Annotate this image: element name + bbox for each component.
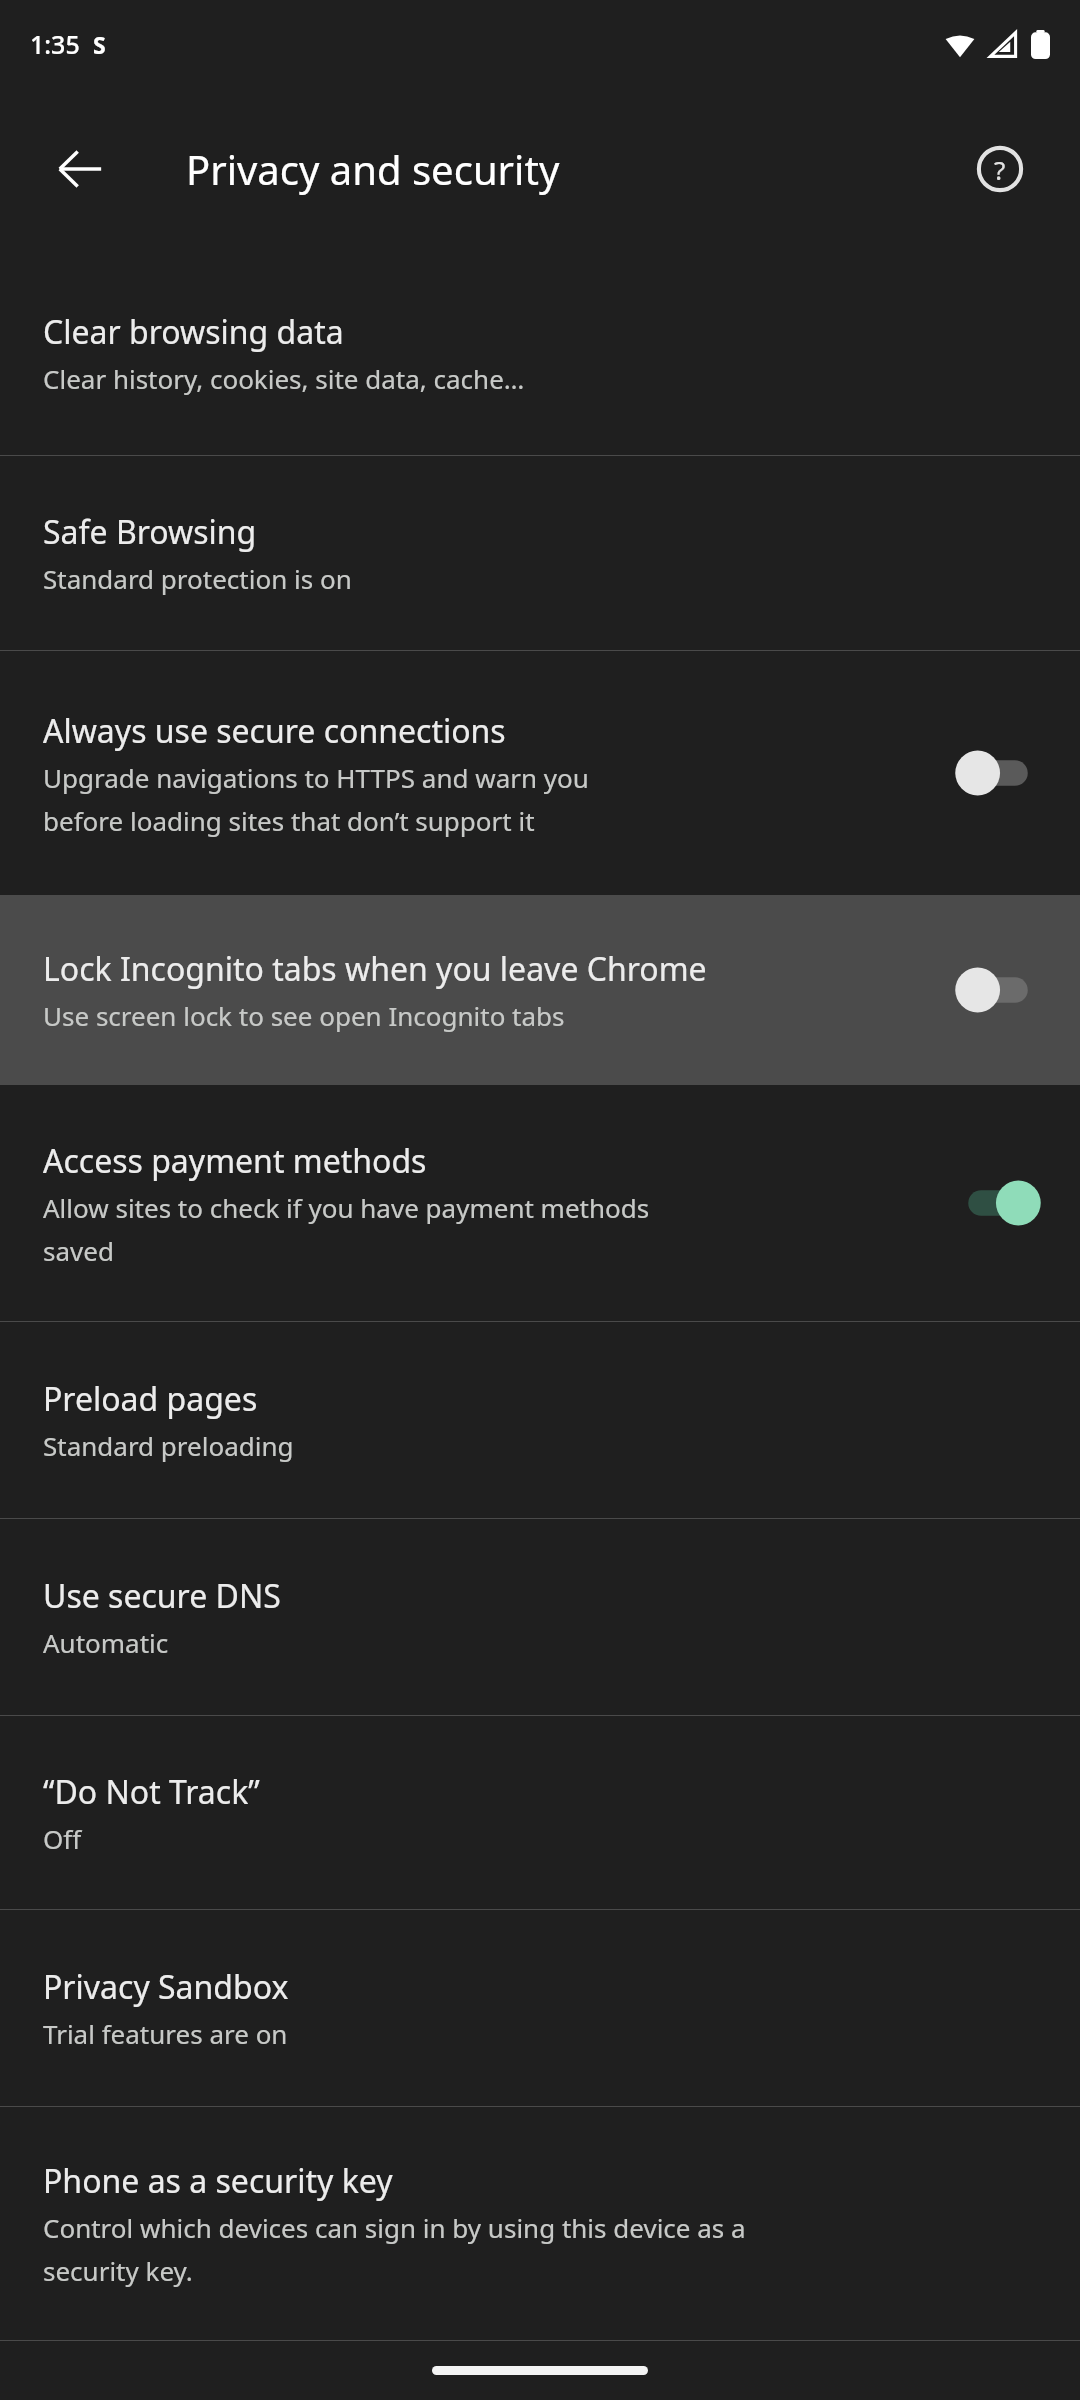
staticText: ? <box>994 152 1006 187</box>
button[interactable]: Safe Browsing <box>0 456 1080 650</box>
button[interactable]: Use secure DNS <box>0 1519 1080 1715</box>
button[interactable]: On <box>950 1171 1046 1235</box>
staticText: 1:35 <box>30 27 80 61</box>
staticText: security key. <box>43 2253 193 2288</box>
staticText: Standard protection is on <box>43 561 352 596</box>
staticText: Upgrade navigations to HTTPS and warn yo… <box>43 760 589 795</box>
staticText: Safe Browsing <box>43 510 257 554</box>
staticText: Always use secure connections <box>43 709 506 753</box>
button[interactable]: Privacy Sandbox <box>0 1910 1080 2106</box>
staticText: Allow sites to check if you have payment… <box>43 1190 650 1225</box>
staticText: Off <box>43 1821 82 1856</box>
button[interactable]: Always use secure connections <box>0 651 1080 895</box>
button[interactable]: Clear browsing data <box>0 250 1080 455</box>
staticText: Trial features are on <box>43 2016 288 2051</box>
staticText: Automatic <box>43 1625 169 1660</box>
staticText: before loading sites that don’t support … <box>43 803 535 838</box>
staticText: Privacy and security <box>186 142 560 196</box>
staticText: “Do Not Track” <box>43 1770 260 1814</box>
staticText: Clear history, cookies, site data, cache… <box>43 361 525 396</box>
button[interactable]: Access payment methods <box>0 1085 1080 1321</box>
staticText: Use screen lock to see open Incognito ta… <box>43 998 565 1033</box>
button[interactable]: Preload pages <box>0 1322 1080 1518</box>
button[interactable]: Phone as a security key <box>0 2107 1080 2339</box>
staticText: Phone as a security key <box>43 2159 393 2203</box>
button[interactable]: Help <box>946 115 1054 223</box>
button[interactable]: “Do Not Track” <box>0 1716 1080 1909</box>
button[interactable]: Off <box>950 741 1046 805</box>
button[interactable]: Lock Incognito tabs when you leave Chrom… <box>0 895 1080 1085</box>
staticText: saved <box>43 1233 114 1268</box>
staticText: Use secure DNS <box>43 1574 281 1618</box>
button[interactable]: Back <box>26 115 134 223</box>
staticText: S <box>93 29 106 60</box>
staticText: Lock Incognito tabs when you leave Chrom… <box>43 947 707 991</box>
staticText: Privacy Sandbox <box>43 1965 289 2009</box>
staticText: Standard preloading <box>43 1428 294 1463</box>
staticText: Preload pages <box>43 1377 258 1421</box>
staticText: Access payment methods <box>43 1139 427 1183</box>
staticText: Clear browsing data <box>43 310 344 354</box>
staticText: Control which devices can sign in by usi… <box>43 2210 746 2245</box>
button[interactable]: Off <box>950 958 1046 1022</box>
